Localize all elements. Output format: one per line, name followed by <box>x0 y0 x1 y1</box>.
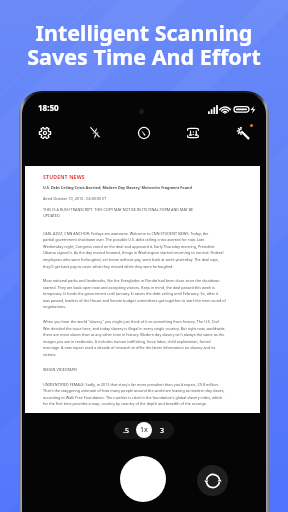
button[interactable]: Take photo <box>120 456 166 502</box>
staticText: Most national parks and landmarks, like … <box>43 278 220 283</box>
staticText: Aired October 10, 2013 - 04:00:00 ET <box>43 196 107 201</box>
staticText: War decided the issue here, and today sl… <box>43 326 226 331</box>
staticText: U.S. Debt Ceiling Crisis Averted; Modern… <box>43 185 192 190</box>
staticText: (BEGIN VIDEOTAPE) <box>43 367 78 372</box>
staticText: UNIDENTIFIED FEMALE: Sadly, in 2013 that… <box>43 382 219 387</box>
staticText: according to Walk Free Foundation. The n… <box>43 395 223 400</box>
staticText: When you hear the world "slavery" you mi… <box>43 319 219 324</box>
button[interactable]: Timer <box>134 123 154 143</box>
staticText: STUDENT NEWS <box>43 173 85 180</box>
staticText: Obama signed it. As the day moved forwar… <box>43 250 224 255</box>
staticText: started. They are back open now and acce… <box>43 285 215 290</box>
staticText: images you see in textbooks. It includes… <box>43 339 211 344</box>
button[interactable]: 1x <box>136 422 152 438</box>
staticText: partial government shutdown over. The po… <box>43 237 205 242</box>
staticText: was passed, leaders of the House and Sen… <box>43 298 226 303</box>
button[interactable]: Switch camera <box>197 465 228 496</box>
staticText: CARL AZUZ, CNN ANCHOR: Fridays are aweso… <box>43 231 209 236</box>
staticText: 3 <box>160 426 165 436</box>
button[interactable]: Aspect ratio <box>183 123 203 143</box>
staticText: victims. <box>43 352 57 357</box>
button[interactable]: 3 <box>154 422 171 439</box>
staticText: THIS IS A RUSH TRANSCRIPT. THIS COPY MAY… <box>43 207 194 212</box>
staticText: Intelligent Scanning Saves Time And Effo… <box>0 18 288 72</box>
staticText: UPDATED. <box>43 213 61 218</box>
staticText: negotiations. <box>43 304 67 309</box>
staticText: That's the staggering estimate of how ma… <box>43 388 225 393</box>
button[interactable]: .5 <box>117 422 134 439</box>
button[interactable]: Flash off <box>85 123 105 143</box>
staticText: temporary. It funds the government until… <box>43 291 219 296</box>
staticText: 18:50 <box>38 102 59 113</box>
staticText: marriage. A new report used a decade of … <box>43 345 216 350</box>
staticText: they'll get back pay to cover what they … <box>43 264 174 269</box>
staticText: employees who were furloughed, set home … <box>43 257 219 262</box>
staticText: Wednesday night, Congress voted on the d… <box>43 244 215 249</box>
staticText: 1x <box>140 425 148 435</box>
staticText: for the first time provides a map, count… <box>43 401 207 406</box>
staticText: there are more slaves than at any other … <box>43 332 225 337</box>
staticText: .5 <box>123 426 129 436</box>
button[interactable]: Enhance <box>233 123 253 143</box>
button[interactable]: Settings <box>35 123 55 143</box>
